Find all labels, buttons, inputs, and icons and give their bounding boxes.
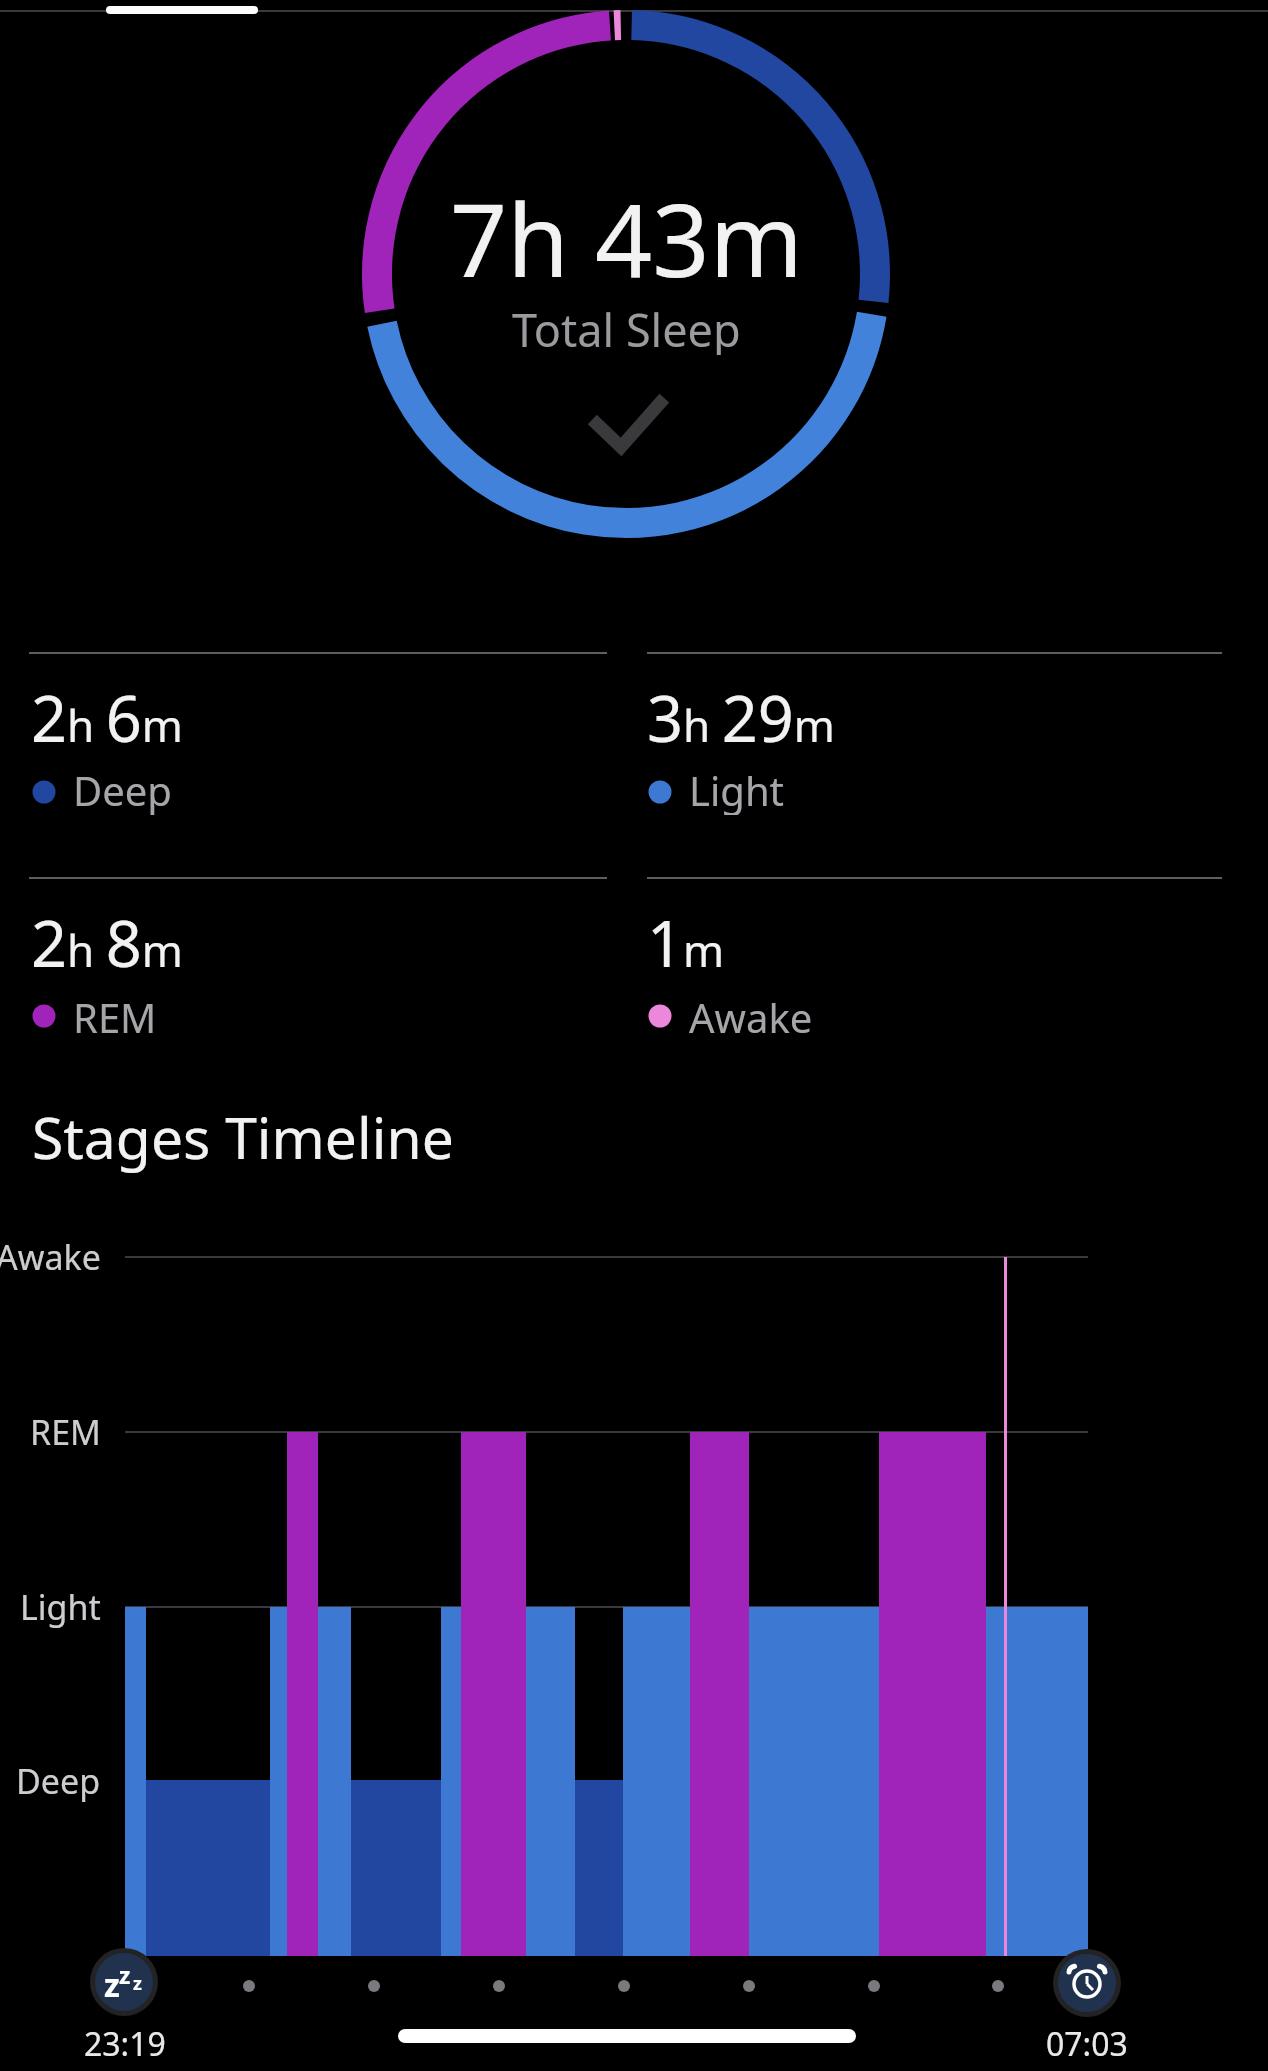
staticText: Light [689, 763, 785, 815]
staticText: 1m [647, 900, 725, 986]
staticText: 2h 6m [31, 675, 183, 761]
staticText: 2h 8m [31, 900, 183, 986]
staticText: 23:19 [84, 2022, 166, 2062]
staticText: z [133, 1971, 142, 1996]
staticText: Deep [73, 763, 172, 815]
staticText: Deep [16, 1758, 101, 1804]
staticText: 7h 43m [450, 170, 803, 290]
button[interactable] [90, 1948, 158, 2016]
staticText: Light [20, 1584, 101, 1630]
staticText: Total Sleep [512, 299, 741, 355]
staticText: REM [30, 1409, 101, 1455]
staticText: z [119, 1959, 131, 1990]
staticText: REM [73, 990, 157, 1042]
staticText: Awake [0, 1234, 101, 1280]
staticText: z [104, 1963, 120, 2007]
staticText: Awake [689, 990, 813, 1042]
staticText: Stages Timeline [32, 1098, 454, 1176]
staticText: 07:03 [1046, 2022, 1128, 2062]
staticText: 3h 29m [647, 675, 835, 761]
button[interactable] [1053, 1949, 1121, 2017]
